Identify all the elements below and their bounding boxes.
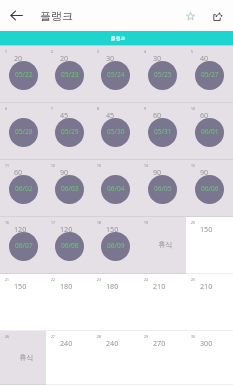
- button[interactable]: 11: [0, 160, 46, 217]
- button[interactable]: 25: [186, 274, 233, 331]
- staticText: 210: [200, 281, 213, 291]
- staticText: 150: [200, 224, 213, 234]
- button[interactable]: Favorite: [179, 0, 207, 31]
- staticText: 25: [191, 277, 195, 282]
- button[interactable]: 28: [92, 331, 139, 385]
- button[interactable]: 3: [92, 46, 139, 103]
- button[interactable]: 22: [46, 274, 92, 331]
- staticText: 05/28: [15, 127, 33, 136]
- button[interactable]: 16: [0, 217, 46, 274]
- staticText: 30: [191, 334, 195, 339]
- staticText: 20: [14, 53, 23, 63]
- staticText: 2: [51, 49, 53, 54]
- staticText: 06/01: [201, 127, 219, 136]
- button[interactable]: 23: [92, 274, 139, 331]
- staticText: 21: [5, 277, 9, 282]
- staticText: 플랭크: [40, 9, 73, 23]
- staticText: 14: [144, 163, 148, 168]
- button[interactable]: 19: [139, 217, 186, 274]
- staticText: 06/03: [61, 184, 79, 193]
- button[interactable]: 5: [186, 46, 233, 103]
- button[interactable]: 18: [92, 217, 139, 274]
- staticText: 05/24: [107, 70, 125, 79]
- button[interactable]: 21: [0, 274, 46, 331]
- button[interactable]: 27: [46, 331, 92, 385]
- button[interactable]: Share: [207, 0, 233, 31]
- staticText: 3: [97, 49, 99, 54]
- staticText: 22: [51, 277, 55, 282]
- button[interactable]: 8: [92, 103, 139, 160]
- button[interactable]: 15: [186, 160, 233, 217]
- staticText: 9: [144, 106, 146, 111]
- staticText: 30: [106, 53, 115, 63]
- staticText: 06/04: [107, 184, 125, 193]
- button[interactable]: 12: [46, 160, 92, 217]
- staticText: 05/30: [107, 127, 125, 136]
- staticText: 4: [144, 49, 146, 54]
- staticText: 05/27: [201, 70, 219, 79]
- staticText: 05/22: [15, 70, 33, 79]
- staticText: 18: [97, 220, 101, 225]
- button[interactable]: Back: [0, 0, 33, 31]
- staticText: 06/09: [107, 241, 125, 250]
- staticText: 휴식: [158, 240, 173, 249]
- staticText: 20: [60, 53, 69, 63]
- staticText: 150: [14, 281, 27, 291]
- staticText: 플랭크: [111, 35, 126, 41]
- staticText: 210: [153, 281, 166, 291]
- staticText: 23: [97, 277, 101, 282]
- staticText: 300: [200, 338, 213, 348]
- button[interactable]: 6: [0, 103, 46, 160]
- staticText: 05/31: [154, 127, 172, 136]
- staticText: 15: [191, 163, 195, 168]
- staticText: 27: [51, 334, 55, 339]
- staticText: 45: [60, 110, 69, 120]
- button[interactable]: 14: [139, 160, 186, 217]
- staticText: 12: [51, 163, 55, 168]
- staticText: 240: [60, 338, 73, 348]
- staticText: 40: [200, 53, 209, 63]
- staticText: 270: [153, 338, 166, 348]
- staticText: 16: [5, 220, 9, 225]
- staticText: 06/02: [15, 184, 33, 193]
- staticText: 06/07: [15, 241, 33, 250]
- button[interactable]: 플랭크: [0, 31, 233, 45]
- staticText: 05/25: [154, 70, 172, 79]
- button[interactable]: 4: [139, 46, 186, 103]
- staticText: 05/29: [61, 127, 79, 136]
- staticText: 28: [97, 334, 101, 339]
- staticText: 60: [200, 110, 209, 120]
- staticText: 120: [60, 224, 73, 234]
- staticText: 60: [153, 110, 162, 120]
- staticText: 8: [97, 106, 99, 111]
- button[interactable]: 13: [92, 160, 139, 217]
- staticText: 06/06: [201, 184, 219, 193]
- staticText: 90: [60, 167, 69, 177]
- staticText: 240: [106, 338, 119, 348]
- button[interactable]: 30: [186, 331, 233, 385]
- staticText: 180: [60, 281, 73, 291]
- staticText: 19: [144, 220, 148, 225]
- button[interactable]: 29: [139, 331, 186, 385]
- staticText: 06/08: [61, 241, 79, 250]
- staticText: 120: [14, 224, 27, 234]
- staticText: 6: [5, 106, 7, 111]
- staticText: 11: [5, 163, 9, 168]
- staticText: 7: [51, 106, 53, 111]
- button[interactable]: 1: [0, 46, 46, 103]
- staticText: 13: [97, 163, 101, 168]
- button[interactable]: 17: [46, 217, 92, 274]
- button[interactable]: 26: [0, 331, 46, 385]
- button[interactable]: 7: [46, 103, 92, 160]
- staticText: 휴식: [19, 353, 34, 362]
- button[interactable]: 9: [139, 103, 186, 160]
- staticText: 180: [106, 281, 119, 291]
- staticText: 30: [153, 53, 162, 63]
- button[interactable]: 2: [46, 46, 92, 103]
- staticText: 5: [191, 49, 193, 54]
- staticText: 26: [5, 334, 9, 339]
- button[interactable]: 24: [139, 274, 186, 331]
- button[interactable]: 10: [186, 103, 233, 160]
- staticText: 06/05: [154, 184, 172, 193]
- button[interactable]: 20: [186, 217, 233, 274]
